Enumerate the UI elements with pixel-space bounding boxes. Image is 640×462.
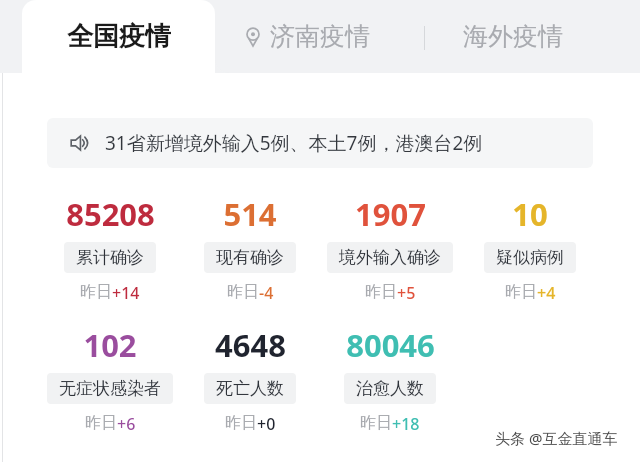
staticText: 1907 [355, 193, 426, 235]
button[interactable]: 10 [460, 193, 600, 304]
staticText: 昨日 [360, 413, 392, 433]
staticText: 头条 @互金直通车 [495, 428, 618, 448]
button[interactable]: 80046 [320, 324, 460, 435]
staticText: +0 [257, 413, 276, 435]
button[interactable]: 85208 [40, 193, 180, 304]
button[interactable]: 全国疫情 [22, 0, 215, 73]
staticText: 昨日 [227, 282, 259, 302]
staticText: 10 [512, 193, 548, 235]
staticText: 昨日 [365, 282, 397, 302]
staticText: 514 [223, 193, 277, 235]
button[interactable]: 102 [40, 324, 180, 435]
staticText: 无症状感染者 [59, 378, 161, 399]
staticText: -4 [259, 282, 274, 304]
staticText: +6 [117, 413, 136, 435]
staticText: 济南疫情 [270, 21, 370, 52]
staticText: +4 [537, 282, 556, 304]
staticText: 现有确诊 [216, 247, 284, 268]
staticText: 海外疫情 [463, 21, 563, 52]
staticText: +14 [112, 282, 140, 304]
staticText: 累计确诊 [76, 247, 144, 268]
button[interactable]: Announcement [47, 118, 593, 168]
button[interactable]: 4648 [180, 324, 320, 435]
other: Announcement [69, 132, 91, 154]
button[interactable]: 514 [180, 193, 320, 304]
button[interactable]: 1907 [320, 193, 460, 304]
staticText: 全国疫情 [67, 20, 171, 53]
staticText: 昨日 [80, 282, 112, 302]
staticText: 80046 [346, 324, 435, 366]
staticText: 境外输入确诊 [339, 247, 441, 268]
staticText: 昨日 [85, 413, 117, 433]
staticText: +5 [397, 282, 416, 304]
staticText: 昨日 [505, 282, 537, 302]
staticText: 治愈人数 [356, 378, 424, 399]
button[interactable]: Location [243, 0, 370, 73]
staticText: 102 [83, 324, 137, 366]
staticText: 疑似病例 [496, 247, 564, 268]
staticText: 85208 [66, 193, 155, 235]
staticText: 死亡人数 [216, 378, 284, 399]
staticText: 4648 [215, 324, 286, 366]
other: Location [243, 27, 263, 47]
button[interactable]: 海外疫情 [463, 0, 563, 73]
staticText: +18 [392, 413, 420, 435]
staticText: 31省新增境外输入5例、本土7例，港澳台2例 [105, 130, 483, 156]
staticText: 昨日 [225, 413, 257, 433]
